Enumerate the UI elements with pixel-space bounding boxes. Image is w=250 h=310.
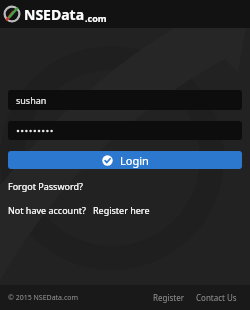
staticText: sushan xyxy=(16,94,47,106)
staticText: .com xyxy=(85,12,107,24)
staticText: Not have account? xyxy=(8,204,86,216)
button[interactable]: Login xyxy=(8,151,242,169)
button[interactable]: Forgot Password? xyxy=(8,180,83,192)
staticText: Login xyxy=(120,153,149,168)
button[interactable]: sushan xyxy=(8,90,242,110)
button[interactable]: Contact Us xyxy=(196,292,237,303)
button[interactable] xyxy=(8,121,242,140)
button[interactable]: Register xyxy=(153,292,185,303)
staticText: NSEData xyxy=(24,5,85,24)
staticText: © 2015 NSEData.com xyxy=(8,293,79,303)
button[interactable]: Register here xyxy=(93,204,150,216)
